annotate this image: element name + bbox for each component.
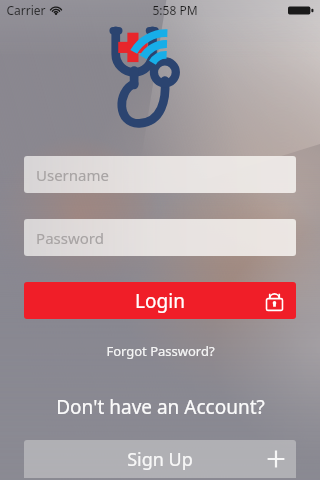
staticText: Sign Up bbox=[127, 447, 193, 472]
staticText: Don't have an Account? bbox=[56, 394, 265, 420]
staticText: Login bbox=[135, 288, 185, 314]
button[interactable]: Sign Up bbox=[24, 440, 296, 478]
staticText: Password bbox=[36, 228, 104, 248]
button[interactable]: Password bbox=[24, 219, 296, 256]
staticText: Username bbox=[36, 165, 109, 185]
staticText: 5:58 PM bbox=[152, 2, 198, 18]
button[interactable]: Username bbox=[24, 156, 296, 193]
button[interactable]: Forgot Password? bbox=[96, 339, 225, 363]
button[interactable]: Login bbox=[24, 282, 296, 319]
staticText: Forgot Password? bbox=[106, 342, 215, 360]
staticText: Carrier bbox=[6, 2, 46, 18]
